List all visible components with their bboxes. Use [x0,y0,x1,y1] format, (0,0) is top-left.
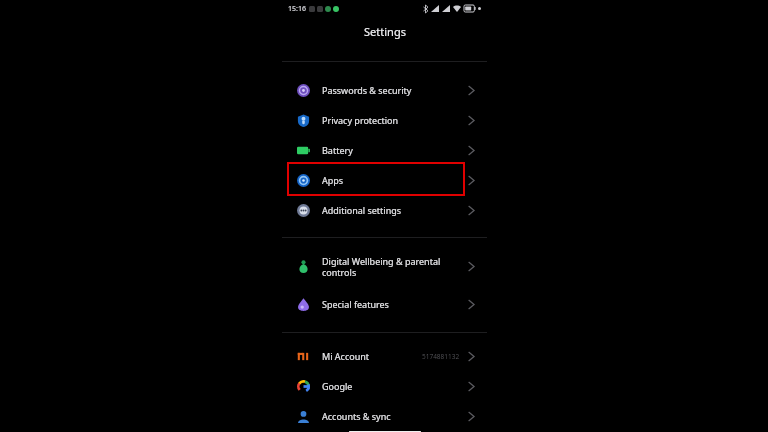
button[interactable]: Special features [282,289,487,319]
staticText: 15:16 [288,4,306,14]
button[interactable]: Mi Account [282,341,487,371]
staticText: Google [322,380,467,392]
staticText: Additional settings [322,204,467,216]
staticText: Digital Wellbeing & parental controls [322,255,467,278]
staticText: Settings [364,24,406,39]
staticText: Accounts & sync [322,410,467,422]
staticText: Passwords & security [322,84,467,96]
button[interactable]: Privacy protection [282,105,487,135]
staticText: Special features [322,298,467,310]
staticText: Battery [322,144,467,156]
button[interactable]: Accounts & sync [282,401,487,431]
staticText: Apps [322,174,467,186]
button[interactable]: Battery [282,135,487,165]
staticText: 5174881132 [422,352,460,361]
button[interactable]: Additional settings [282,195,487,225]
staticText: Mi Account [322,350,422,362]
button[interactable]: Google [282,371,487,401]
button[interactable]: Apps [282,165,487,195]
button[interactable]: Digital Wellbeing & parental controls [282,249,487,283]
staticText: Privacy protection [322,114,467,126]
button[interactable]: Passwords & security [282,75,487,105]
